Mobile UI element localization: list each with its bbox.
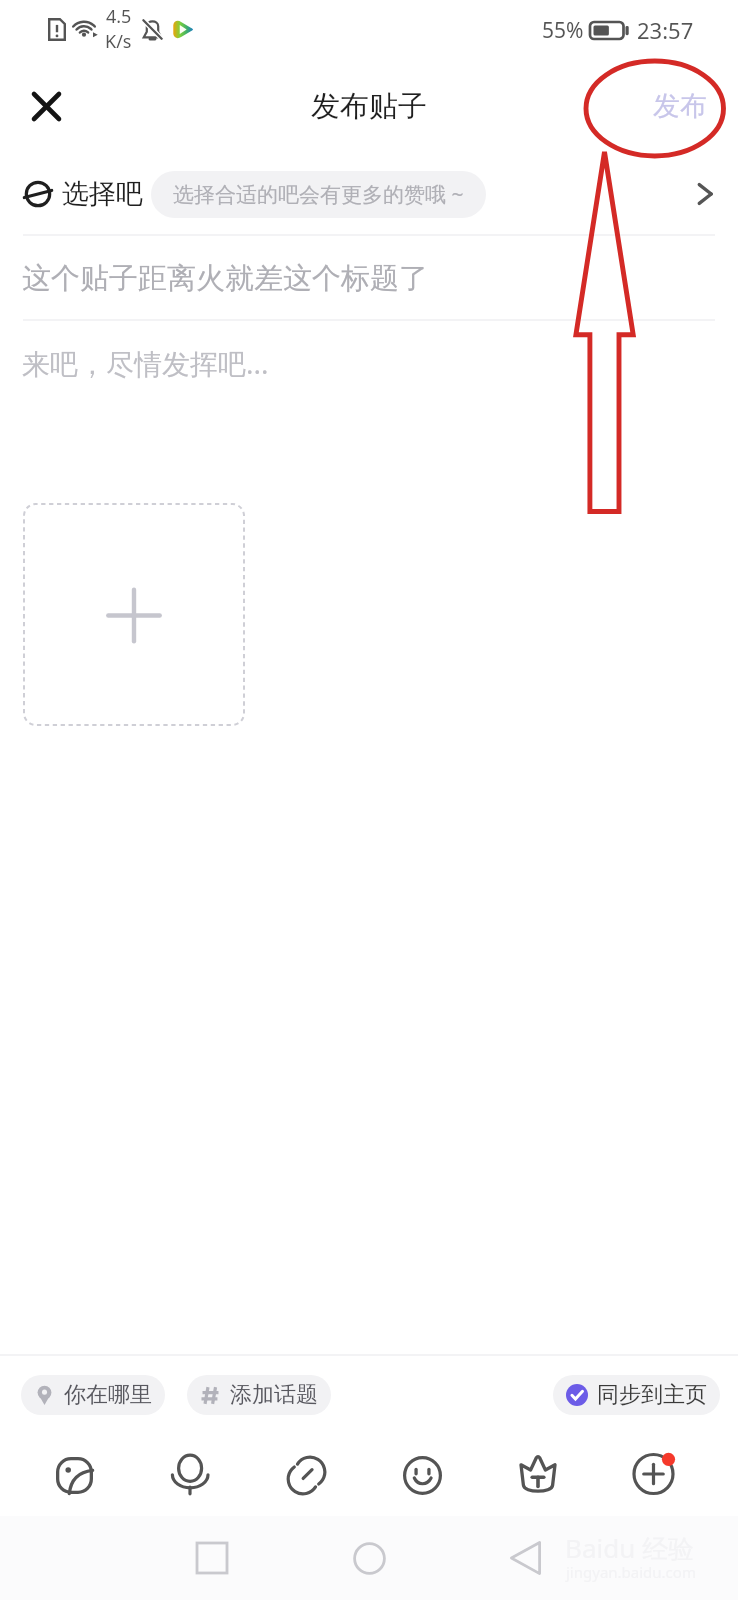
- staticText: 23:57: [637, 15, 694, 45]
- button[interactable]: Back: [494, 1516, 556, 1600]
- button[interactable]: Add photo: [43, 1438, 105, 1512]
- button[interactable]: More: [623, 1438, 685, 1512]
- button[interactable]: 添加话题: [187, 1375, 331, 1415]
- staticText: 你在哪里: [64, 1381, 152, 1409]
- button[interactable]: Close: [16, 76, 77, 136]
- button[interactable]: 这个贴子距离火就差这个标题了: [0, 235, 738, 321]
- button[interactable]: Home: [338, 1516, 400, 1600]
- staticText: 选择吧: [62, 177, 143, 211]
- button[interactable]: 你在哪里: [21, 1375, 165, 1415]
- button[interactable]: 发布: [621, 76, 738, 136]
- staticText: 55%: [542, 16, 584, 45]
- staticText: 发布贴子: [311, 88, 427, 125]
- staticText: 来吧，尽情发挥吧...: [22, 344, 269, 382]
- button[interactable]: 来吧，尽情发挥吧...: [0, 323, 738, 403]
- button[interactable]: Add photo: [23, 503, 245, 726]
- staticText: 选择合适的吧会有更多的赞哦 ~: [173, 180, 464, 209]
- button[interactable]: 同步到主页: [553, 1375, 720, 1415]
- button[interactable]: Emoji: [391, 1438, 453, 1512]
- staticText: 添加话题: [230, 1381, 318, 1409]
- button[interactable]: Recents: [181, 1516, 243, 1600]
- staticText: 发布: [653, 89, 707, 123]
- staticText: K/s: [105, 29, 132, 54]
- staticText: 4.5: [106, 4, 132, 29]
- button[interactable]: 选择吧: [0, 153, 738, 235]
- button[interactable]: Link: [275, 1438, 337, 1512]
- button[interactable]: Voice: [159, 1438, 221, 1512]
- staticText: 同步到主页: [597, 1381, 707, 1409]
- button[interactable]: Privileges: [507, 1438, 569, 1512]
- staticText: 这个贴子距离火就差这个标题了: [22, 260, 428, 297]
